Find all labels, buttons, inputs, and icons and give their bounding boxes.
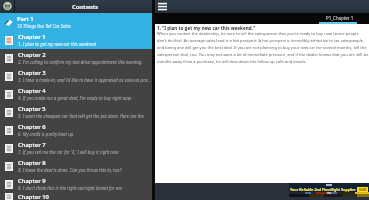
button[interactable]: Chapter 3 — [0, 67, 152, 85]
staticText: 1. "I plan to get my new car this weeken… — [157, 25, 256, 31]
button[interactable]: Chapter 2 — [0, 49, 152, 67]
staticText: Chapter 1 — [18, 33, 46, 41]
staticText: Chapter 10 — [18, 193, 49, 200]
staticText: 10 Things You Tell Car Sales — [17, 23, 71, 29]
button[interactable]: Chapter 6 — [0, 121, 152, 139]
staticText: Contents — [72, 3, 99, 11]
staticText: Part 1 — [17, 15, 34, 23]
staticText: 2. I'm calling to confirm my test-drive … — [18, 59, 143, 65]
staticText: When you contact the dealership, be sure… — [157, 31, 369, 65]
staticText: 4. If you make me a great deal, I'm read… — [18, 95, 132, 101]
staticText: 5. I want the cheapest car that will get… — [18, 113, 150, 119]
staticText: 3. I have a trade-in, and I'd like to ha… — [18, 77, 150, 83]
staticText: Chapter 6 — [18, 123, 46, 131]
staticText: Your Reliable 2nd Floodlight Supplier — [290, 187, 356, 192]
button[interactable]: Chapter 4 — [0, 85, 152, 103]
button[interactable]: Chapter 10 — [0, 193, 152, 200]
button[interactable]: Menu — [155, 0, 169, 13]
staticText: 6. My credit is pretty beat up — [18, 131, 74, 137]
button[interactable]: Chapter 7 — [0, 139, 152, 157]
staticText: 9. I don't think this is the right car/r… — [18, 185, 122, 191]
staticText: MORE — [359, 188, 367, 192]
button[interactable]: Chapter 1 — [0, 31, 152, 49]
button[interactable]: Part 1 — [0, 13, 152, 31]
button[interactable]: P1_Chapter 1 — [320, 13, 369, 24]
staticText: 8. I know the deal is done. Can you thro… — [18, 167, 122, 173]
staticText: Chapter 9 — [18, 177, 46, 185]
button[interactable]: Advertisement banner — [289, 183, 369, 197]
staticText: 1. I plan to get my new car this weekend — [18, 41, 96, 47]
staticText: Chapter 8 — [18, 159, 46, 167]
staticText: Chapter 2 — [18, 51, 46, 59]
staticText: Chapter 7 — [18, 141, 46, 149]
staticText: Chapter 5 — [18, 105, 46, 113]
staticText: Chapter 4 — [18, 87, 46, 95]
staticText: Chapter 3 — [18, 69, 46, 77]
staticText: 7. If you sell me the car for 'X,' I wil… — [18, 149, 119, 155]
button[interactable]: Chapter 9 — [0, 175, 152, 193]
button[interactable]: Chapter 5 — [0, 103, 152, 121]
button[interactable]: Chapter 8 — [0, 157, 152, 175]
button[interactable]: App icon — [0, 0, 14, 13]
staticText: P1_Chapter 1 — [326, 15, 354, 21]
